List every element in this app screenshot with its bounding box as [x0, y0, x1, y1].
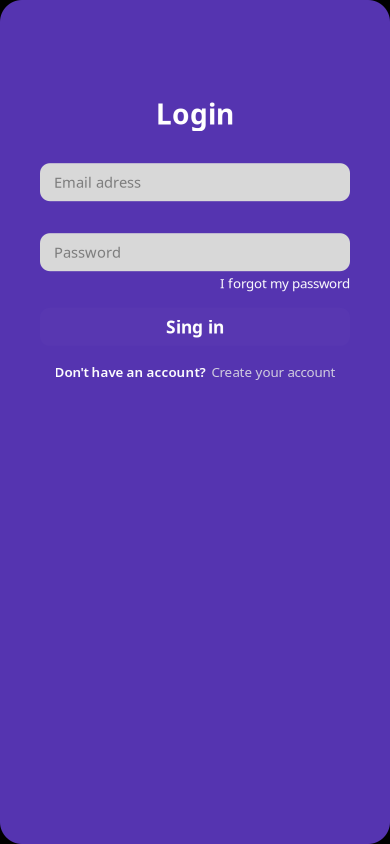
button[interactable]: I forgot my password [220, 274, 350, 292]
staticText: Sing in [166, 315, 224, 338]
staticText: Don't have an account? [54, 363, 205, 381]
staticText: I forgot my password [220, 274, 350, 292]
staticText: Login [156, 95, 234, 132]
staticText: Password [54, 242, 121, 262]
staticText: Email adress [54, 172, 141, 192]
button[interactable]: Sing in [40, 308, 350, 346]
staticText: Create your account [211, 363, 335, 381]
button[interactable]: Create your account [211, 363, 335, 381]
